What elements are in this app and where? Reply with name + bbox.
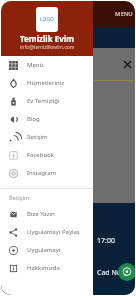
staticText: Instagram (27, 169, 57, 177)
button[interactable]: Instagram (1, 164, 93, 182)
staticText: Uygulamayı Paylaş (27, 228, 80, 236)
staticText: Temizlik Evim (20, 33, 75, 44)
button[interactable]: Menü (1, 56, 93, 74)
button[interactable]: Blog (1, 110, 93, 128)
button[interactable]: WhatsApp (118, 263, 135, 281)
staticText: MENU (115, 10, 133, 18)
button[interactable]: Bize Yazın (1, 205, 93, 223)
staticText: Uygulamayı Değerlendir (27, 246, 93, 254)
staticText: 17:00 (97, 236, 115, 246)
button[interactable]: Hizmetleriniz (1, 74, 93, 92)
button[interactable]: Ev Temizliği (1, 92, 93, 110)
button[interactable]: Hakkımızda (1, 259, 93, 277)
staticText: Bize Yazın (27, 210, 55, 218)
button[interactable]: Uygulamayı Paylaş (1, 223, 93, 241)
staticText: Hakkımızda (27, 264, 60, 272)
staticText: Blog (27, 115, 40, 123)
staticText: İletişim (27, 133, 48, 141)
button[interactable]: İletişim (1, 128, 93, 146)
staticText: Ev Temizliği (27, 97, 60, 105)
staticText: Cad No3 (97, 268, 126, 278)
staticText: Facebook (27, 151, 54, 159)
button[interactable]: Facebook (1, 146, 93, 164)
staticText: info@temizlikevim.com (20, 44, 75, 51)
button[interactable]: Uygulamayı Değerlendir (1, 241, 93, 259)
button[interactable]: Close (119, 56, 135, 72)
staticText: İletişim (9, 194, 30, 202)
staticText: Hizmetleriniz (27, 79, 65, 87)
staticText: LOGO (40, 16, 54, 23)
staticText: Menü (27, 61, 44, 69)
